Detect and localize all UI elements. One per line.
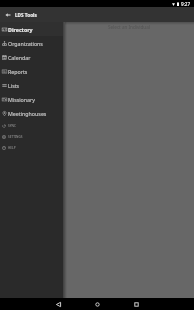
button[interactable]: Home — [89, 298, 105, 310]
button[interactable]: Back — [0, 7, 15, 22]
button[interactable]: Back — [50, 298, 66, 310]
button[interactable]: Organizations — [0, 36, 63, 50]
button[interactable]: SYNC — [0, 120, 63, 131]
button[interactable]: Meetinghouses — [0, 106, 63, 120]
staticText: LDS Tools — [15, 12, 37, 18]
button[interactable]: Reports — [0, 64, 63, 78]
staticText: Lists — [8, 82, 20, 89]
staticText: Reports — [8, 68, 28, 75]
button[interactable]: Recent apps — [128, 298, 144, 310]
button[interactable]: Lists — [0, 78, 63, 92]
button[interactable]: HELP — [0, 142, 63, 153]
staticText: Meetinghouses — [8, 110, 47, 117]
button[interactable]: SETTINGS — [0, 131, 63, 142]
button[interactable]: Missionary — [0, 92, 63, 106]
staticText: Directory — [8, 26, 33, 33]
staticText: Missionary — [8, 96, 35, 103]
staticText: HELP — [8, 146, 16, 150]
staticText: Select an Individual — [108, 24, 150, 30]
staticText: SETTINGS — [8, 135, 23, 139]
staticText: 9:27 — [181, 1, 191, 7]
staticText: Calendar — [8, 54, 31, 61]
button[interactable]: Calendar — [0, 50, 63, 64]
staticText: Organizations — [8, 40, 43, 47]
staticText: SYNC — [8, 124, 16, 128]
button[interactable]: Directory — [0, 22, 63, 36]
